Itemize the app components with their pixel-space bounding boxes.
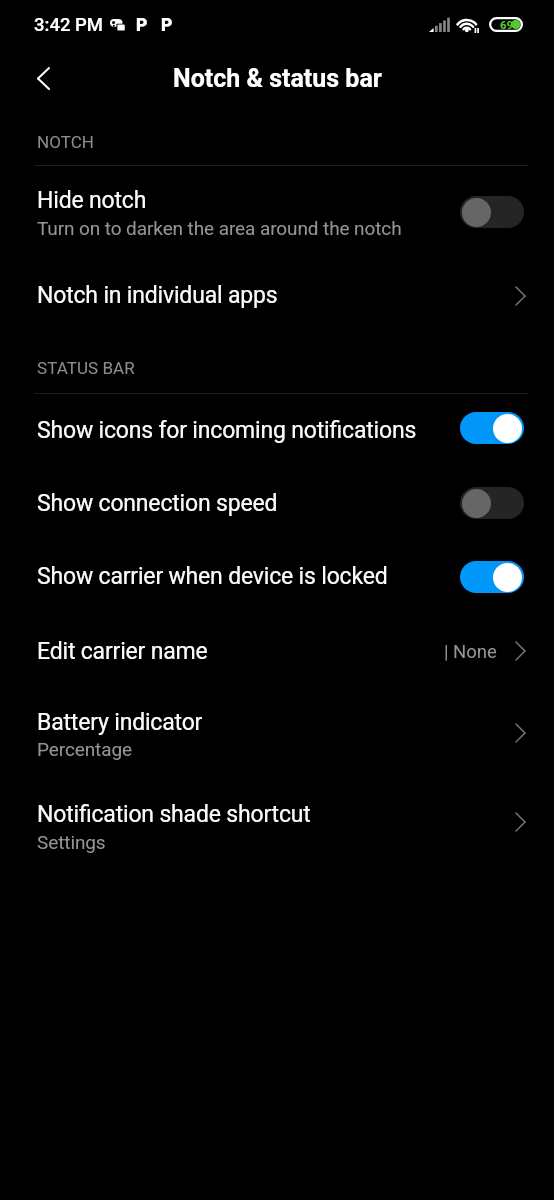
staticText: P: [161, 15, 173, 36]
staticText: Show carrier when device is locked: [37, 563, 388, 590]
staticText: | None: [444, 641, 497, 663]
staticText: Battery indicator: [37, 709, 203, 736]
staticText: P: [136, 15, 148, 36]
button[interactable]: [0, 785, 554, 869]
staticText: Notification shade shortcut: [37, 801, 311, 828]
staticText: Notch & status bar: [173, 64, 382, 93]
staticText: NOTCH: [37, 132, 94, 152]
button[interactable]: Switch off: [460, 196, 524, 228]
staticText: Turn on to darken the area around the no…: [37, 217, 402, 239]
staticText: 69: [500, 18, 514, 31]
staticText: Notch in individual apps: [37, 282, 278, 309]
button[interactable]: [0, 692, 554, 776]
staticText: Settings: [37, 831, 106, 853]
button[interactable]: [0, 174, 554, 248]
staticText: Show icons for incoming notifications: [37, 417, 417, 444]
button[interactable]: [0, 615, 554, 689]
button[interactable]: [0, 393, 554, 467]
staticText: Show connection speed: [37, 490, 278, 517]
staticText: STATUS BAR: [37, 358, 135, 378]
staticText: Hide notch: [37, 187, 147, 214]
button[interactable]: [0, 541, 554, 615]
staticText: Percentage: [37, 738, 133, 760]
button[interactable]: Back: [18, 54, 70, 104]
button[interactable]: Switch off: [460, 487, 524, 519]
button[interactable]: Switch on: [460, 561, 524, 593]
staticText: 3:42 PM: [34, 14, 104, 36]
staticText: Edit carrier name: [37, 638, 208, 665]
button[interactable]: [0, 258, 554, 332]
button[interactable]: Switch on: [460, 412, 524, 444]
button[interactable]: [0, 467, 554, 541]
